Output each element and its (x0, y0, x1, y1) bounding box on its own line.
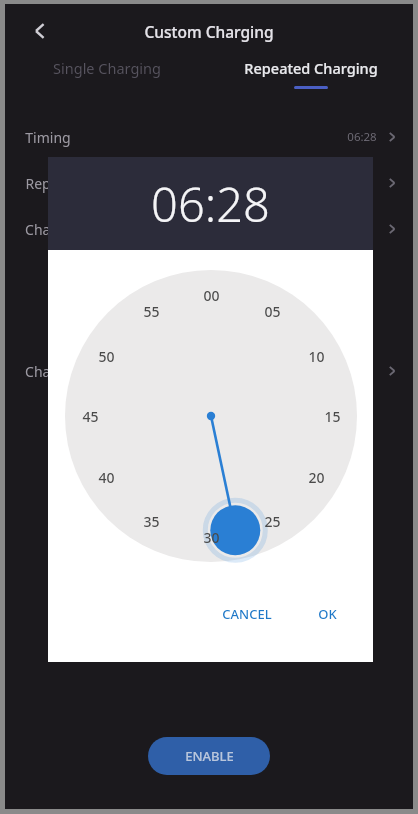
button[interactable]: Timing (5, 114, 413, 160)
staticText: CANCEL (222, 605, 272, 623)
staticText: 15 (324, 407, 341, 426)
staticText: 05 (264, 302, 281, 321)
staticText: Repeat (25, 174, 72, 193)
staticText: 35 (143, 512, 160, 531)
staticText: 20 (308, 468, 325, 487)
staticText: OK (318, 605, 337, 623)
staticText: ENABLE (185, 747, 234, 765)
staticText: 25 (264, 512, 281, 531)
button[interactable]: ENABLE (148, 737, 270, 775)
staticText: 30 (203, 528, 220, 547)
button[interactable]: CANCEL (212, 597, 282, 631)
staticText: Charging Mode (25, 362, 127, 381)
staticText: Charging Limit (25, 220, 122, 239)
staticText: 10 (308, 347, 325, 366)
staticText: 55 (143, 302, 160, 321)
staticText: Repeated Charging (244, 58, 378, 78)
staticText: 50 (98, 347, 115, 366)
staticText: 00 (203, 286, 220, 305)
button[interactable]: Repeat (5, 160, 413, 206)
staticText: 45 (82, 407, 99, 426)
button[interactable]: Charging Mode (5, 348, 413, 394)
button[interactable]: OK (308, 597, 347, 631)
staticText: 40 (98, 468, 115, 487)
button[interactable]: Repeated Charging (209, 58, 413, 89)
button[interactable]: Charging Limit (5, 206, 413, 252)
staticText: Single Charging (53, 58, 161, 78)
staticText: 06:28 (347, 129, 377, 145)
staticText: Timing (25, 128, 71, 147)
button[interactable]: Single Charging (5, 58, 209, 89)
staticText: Custom Charging (144, 21, 274, 42)
staticText: 06:28 (151, 172, 270, 236)
button[interactable]: Back (23, 14, 57, 48)
